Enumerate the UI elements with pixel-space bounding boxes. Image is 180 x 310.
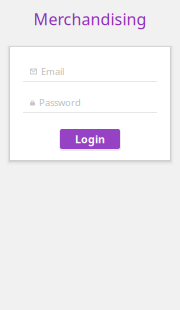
button[interactable]: Login [59, 128, 121, 150]
staticText: Password [39, 96, 81, 109]
staticText: Login [75, 132, 105, 146]
staticText: Merchandising [33, 8, 146, 30]
staticText: Email [41, 65, 64, 78]
button[interactable]: Email [23, 62, 157, 82]
button[interactable]: Password [23, 93, 157, 113]
